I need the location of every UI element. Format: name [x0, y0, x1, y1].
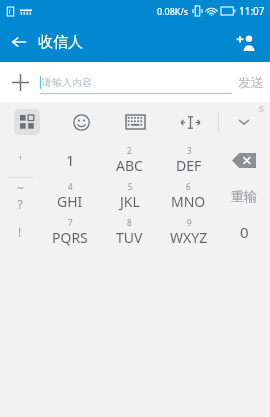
- staticText: DEF: [176, 156, 202, 175]
- button[interactable]: 7: [40, 214, 100, 250]
- staticText: 11:07: [239, 4, 265, 18]
- staticText: 发送: [238, 74, 264, 90]
- staticText: 3: [187, 145, 192, 156]
- button[interactable]: 5: [100, 178, 159, 214]
- staticText: 收信人: [38, 33, 83, 52]
- staticText: 1: [66, 150, 75, 170]
- staticText: 5: [128, 181, 133, 192]
- staticText: ': [19, 152, 22, 168]
- staticText: PQRS: [52, 228, 88, 247]
- staticText: ~: [17, 180, 24, 196]
- button[interactable]: Add recipient: [228, 24, 264, 60]
- staticText: 2: [127, 145, 132, 156]
- button[interactable]: Move cursor: [163, 102, 218, 142]
- staticText: MNO: [171, 192, 206, 211]
- button[interactable]: 4: [40, 178, 100, 214]
- staticText: S: [259, 102, 264, 114]
- button[interactable]: Emoji: [54, 102, 108, 142]
- staticText: 7: [68, 217, 73, 228]
- button[interactable]: 2: [100, 142, 159, 178]
- staticText: 重输: [231, 188, 257, 204]
- button[interactable]: !: [0, 214, 40, 250]
- button[interactable]: 1: [40, 142, 100, 178]
- button[interactable]: 0: [218, 214, 270, 250]
- button[interactable]: Backspace: [218, 142, 270, 178]
- button[interactable]: 重输: [218, 178, 270, 214]
- staticText: ABC: [116, 156, 143, 175]
- button[interactable]: 发送: [238, 62, 264, 102]
- staticText: 6: [186, 181, 191, 192]
- button[interactable]: Hide keyboard: [218, 102, 270, 142]
- staticText: 0.08K/s: [157, 5, 189, 17]
- staticText: 4: [68, 181, 73, 192]
- button[interactable]: Keyboard layout: [108, 102, 163, 142]
- button[interactable]: 6: [159, 178, 218, 214]
- staticText: GHI: [57, 192, 83, 211]
- staticText: TUV: [116, 228, 143, 247]
- staticText: WXYZ: [170, 228, 208, 247]
- button[interactable]: 8: [100, 214, 159, 250]
- staticText: ?: [17, 196, 23, 212]
- staticText: 9: [187, 217, 192, 228]
- staticText: 请输入内容: [42, 76, 92, 89]
- staticText: 8: [127, 217, 132, 228]
- button[interactable]: Back: [0, 23, 38, 61]
- button[interactable]: ': [0, 142, 40, 178]
- button[interactable]: 3: [159, 142, 218, 178]
- staticText: JKL: [120, 192, 140, 211]
- staticText: !: [18, 224, 22, 240]
- button[interactable]: ~: [0, 178, 40, 214]
- button[interactable]: Add attachment: [0, 62, 40, 102]
- staticText: 0: [240, 222, 249, 242]
- button[interactable]: 9: [159, 214, 218, 250]
- button[interactable]: Input methods: [0, 102, 54, 142]
- button[interactable]: 请输入内容: [40, 62, 232, 102]
